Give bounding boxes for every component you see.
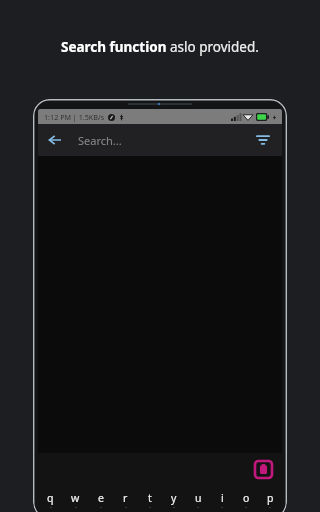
staticText: o bbox=[243, 491, 250, 505]
staticText: 1:12 PM | 1.5KB/s bbox=[44, 112, 105, 122]
button[interactable]: r bbox=[113, 485, 138, 511]
button[interactable]: u bbox=[186, 485, 210, 511]
button[interactable]: t bbox=[138, 485, 162, 511]
button[interactable]: Back bbox=[42, 127, 68, 153]
button[interactable]: p bbox=[258, 485, 282, 511]
staticText: Search... bbox=[78, 133, 122, 148]
button[interactable]: e bbox=[88, 485, 113, 511]
button[interactable]: y bbox=[162, 485, 186, 511]
staticText: t bbox=[148, 491, 152, 505]
staticText: q bbox=[47, 491, 54, 505]
button[interactable]: Clipboard bbox=[255, 461, 272, 478]
button[interactable]: o bbox=[234, 485, 258, 511]
staticText: e bbox=[98, 491, 104, 505]
button[interactable]: q bbox=[38, 485, 63, 511]
staticText: y bbox=[171, 491, 177, 505]
staticText: w bbox=[71, 491, 80, 505]
staticText: u bbox=[195, 491, 202, 505]
staticText: r bbox=[123, 491, 128, 505]
staticText: i bbox=[221, 491, 224, 505]
button[interactable]: i bbox=[210, 485, 234, 511]
staticText: p bbox=[267, 491, 274, 505]
button[interactable]: Filter bbox=[250, 127, 276, 153]
button[interactable]: w bbox=[63, 485, 88, 511]
staticText: Search function aslo provided. bbox=[61, 38, 259, 56]
button[interactable]: Search... bbox=[68, 124, 250, 156]
